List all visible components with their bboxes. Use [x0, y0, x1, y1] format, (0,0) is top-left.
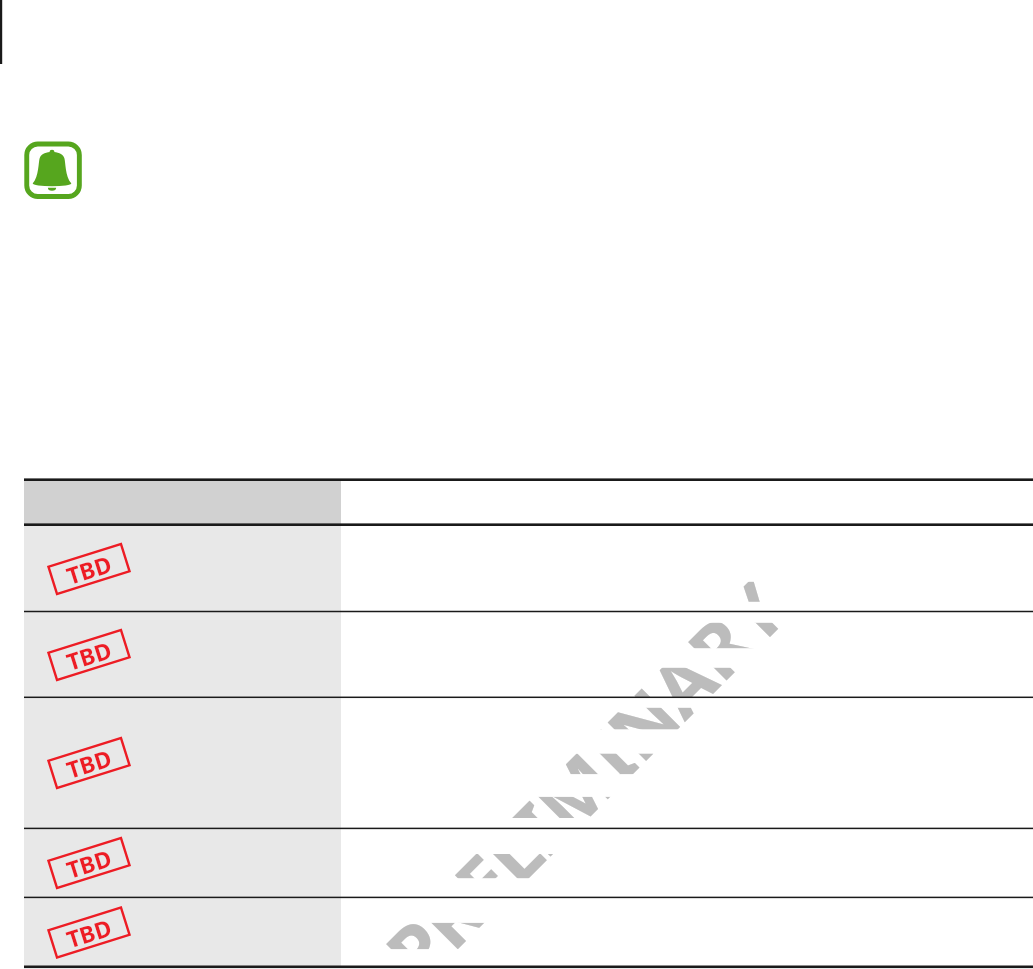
button[interactable]: Table row 2: [24, 612, 1033, 698]
button[interactable]: Notification: [24, 142, 82, 200]
button[interactable]: Table row 1: [24, 525, 1033, 612]
button[interactable]: Table row 5: [24, 897, 1033, 966]
button[interactable]: Table row 4: [24, 828, 1033, 897]
button[interactable]: Table header row: [24, 480, 1033, 525]
button[interactable]: Table row 3: [24, 697, 1033, 828]
